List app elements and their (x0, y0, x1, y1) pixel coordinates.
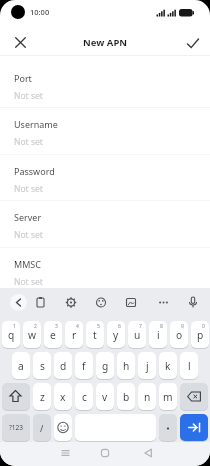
staticText: Password (14, 165, 55, 177)
staticText: z (40, 390, 45, 404)
button[interactable]: t (86, 321, 104, 348)
button[interactable] (185, 35, 201, 51)
button[interactable] (2, 383, 30, 410)
staticText: 2 (34, 323, 37, 330)
staticText: Not set (14, 229, 43, 241)
button[interactable]: Port (0, 72, 210, 112)
staticText: y (113, 328, 119, 342)
button[interactable]: ?123 (2, 414, 30, 441)
staticText: u (134, 328, 141, 342)
staticText: New APN (83, 36, 128, 49)
staticText: Not set (14, 136, 43, 148)
button[interactable]: j (138, 352, 156, 379)
staticText: 10:00 (30, 7, 50, 17)
button[interactable] (10, 294, 27, 311)
button[interactable]: h (117, 352, 135, 379)
button[interactable]: v (96, 383, 114, 410)
button[interactable] (13, 35, 28, 50)
button[interactable]: z (33, 383, 51, 410)
staticText: Port (14, 72, 32, 84)
button[interactable]: Server (0, 211, 210, 251)
staticText: f (82, 359, 86, 373)
staticText: t (93, 328, 97, 342)
staticText: 9 (181, 323, 184, 330)
button[interactable]: n (138, 383, 156, 410)
staticText: Not set (14, 90, 43, 102)
staticText: MMSC (14, 258, 41, 270)
button[interactable]: m (159, 383, 177, 410)
staticText: 1 (13, 323, 16, 330)
button[interactable]: c (75, 383, 93, 410)
button[interactable]: / (33, 414, 51, 441)
staticText: i (157, 328, 160, 342)
button[interactable] (55, 444, 75, 464)
button[interactable]: u (128, 321, 146, 348)
button[interactable]: q (2, 321, 20, 348)
button[interactable]: x (54, 383, 72, 410)
staticText: v (102, 390, 108, 404)
staticText: k (165, 359, 171, 373)
button[interactable]: w (23, 321, 41, 348)
staticText: g (102, 359, 109, 373)
button[interactable]: k (159, 352, 177, 379)
staticText: p (197, 328, 204, 342)
button[interactable]: r (65, 321, 83, 348)
button[interactable]: y (107, 321, 125, 348)
staticText: 3 (55, 323, 58, 330)
button[interactable] (138, 444, 158, 464)
button[interactable]: d (54, 352, 72, 379)
button[interactable]: MMSC (0, 258, 210, 298)
button[interactable]: o (170, 321, 188, 348)
staticText: Not set (14, 183, 43, 195)
staticText: b (123, 390, 130, 404)
button[interactable]: i (149, 321, 167, 348)
button[interactable]: f (75, 352, 93, 379)
staticText: m (163, 390, 173, 404)
button[interactable] (159, 414, 177, 441)
staticText: 4 (76, 323, 79, 330)
staticText: 8 (160, 323, 163, 330)
staticText: l (188, 359, 191, 373)
button[interactable] (180, 383, 208, 410)
button[interactable]: a (12, 352, 30, 379)
staticText: q (8, 328, 15, 342)
staticText: r (72, 328, 77, 342)
staticText: e (50, 328, 56, 342)
button[interactable]: Username (0, 118, 210, 158)
staticText: 5 (97, 323, 100, 330)
staticText: a (18, 359, 24, 373)
staticText: j (146, 359, 149, 373)
staticText: h (123, 359, 130, 373)
staticText: w (28, 328, 37, 342)
staticText: o (176, 328, 183, 342)
button[interactable]: e (44, 321, 62, 348)
staticText: d (60, 359, 67, 373)
button[interactable]: g (96, 352, 114, 379)
button[interactable]: s (33, 352, 51, 379)
button[interactable]: p (191, 321, 209, 348)
button[interactable]: l (180, 352, 198, 379)
staticText: s (40, 359, 45, 373)
staticText: n (144, 390, 151, 404)
staticText: 6 (118, 323, 121, 330)
staticText: Username (14, 118, 58, 130)
staticText: Server (14, 211, 42, 223)
staticText: x (60, 390, 66, 404)
staticText: 7 (139, 323, 142, 330)
button[interactable]: b (117, 383, 135, 410)
button[interactable] (180, 414, 208, 441)
button[interactable] (95, 444, 115, 464)
staticText: ?123 (9, 423, 23, 432)
button[interactable]: Password (0, 165, 210, 205)
staticText: / (40, 422, 44, 434)
staticText: Not set (14, 276, 43, 288)
staticText: c (82, 390, 87, 404)
button[interactable] (54, 414, 72, 441)
staticText: 0 (202, 323, 205, 330)
